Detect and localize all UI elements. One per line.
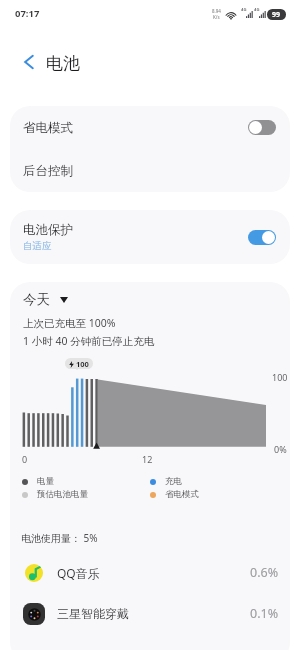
- staticText: 电量: [37, 476, 54, 487]
- button[interactable]: QQ音乐: [10, 552, 290, 593]
- button[interactable]: On: [248, 230, 276, 245]
- staticText: 预估电池电量: [37, 489, 88, 500]
- staticText: 100: [272, 371, 288, 383]
- staticText: 12: [142, 453, 153, 465]
- staticText: 8.94: [212, 8, 221, 14]
- staticText: QQ音乐: [57, 565, 100, 581]
- staticText: 99: [272, 10, 281, 20]
- staticText: 后台控制: [23, 163, 73, 179]
- staticText: 0.1%: [250, 605, 279, 622]
- staticText: 省电模式: [165, 489, 199, 500]
- staticText: 0.6%: [250, 564, 279, 581]
- staticText: 上次已充电至 100%: [23, 316, 116, 330]
- button[interactable]: 电池保护: [10, 210, 290, 264]
- staticText: 省电模式: [23, 120, 73, 136]
- staticText: 今天: [23, 291, 50, 308]
- staticText: 4G: [241, 7, 247, 13]
- staticText: 电池: [46, 53, 80, 74]
- staticText: 0%: [274, 443, 287, 455]
- staticText: K/s: [213, 14, 220, 20]
- staticText: 三星智能穿戴: [57, 606, 129, 621]
- button[interactable]: Off: [248, 120, 276, 135]
- staticText: 100: [76, 359, 89, 369]
- button[interactable]: 后台控制: [10, 149, 290, 192]
- button[interactable]: 省电模式: [10, 106, 290, 149]
- button[interactable]: 今天: [23, 291, 68, 308]
- staticText: 充电: [165, 476, 182, 487]
- staticText: 4G: [254, 7, 260, 13]
- staticText: 1 小时 40 分钟前已停止充电: [23, 334, 155, 348]
- staticText: 电池保护: [23, 222, 73, 238]
- button[interactable]: Back: [17, 50, 41, 74]
- staticText: 自适应: [23, 240, 52, 252]
- staticText: 电池使用量： 5%: [21, 531, 98, 545]
- staticText: 07:17: [15, 7, 40, 20]
- button[interactable]: 三星智能穿戴: [10, 593, 290, 634]
- staticText: 0: [22, 453, 28, 465]
